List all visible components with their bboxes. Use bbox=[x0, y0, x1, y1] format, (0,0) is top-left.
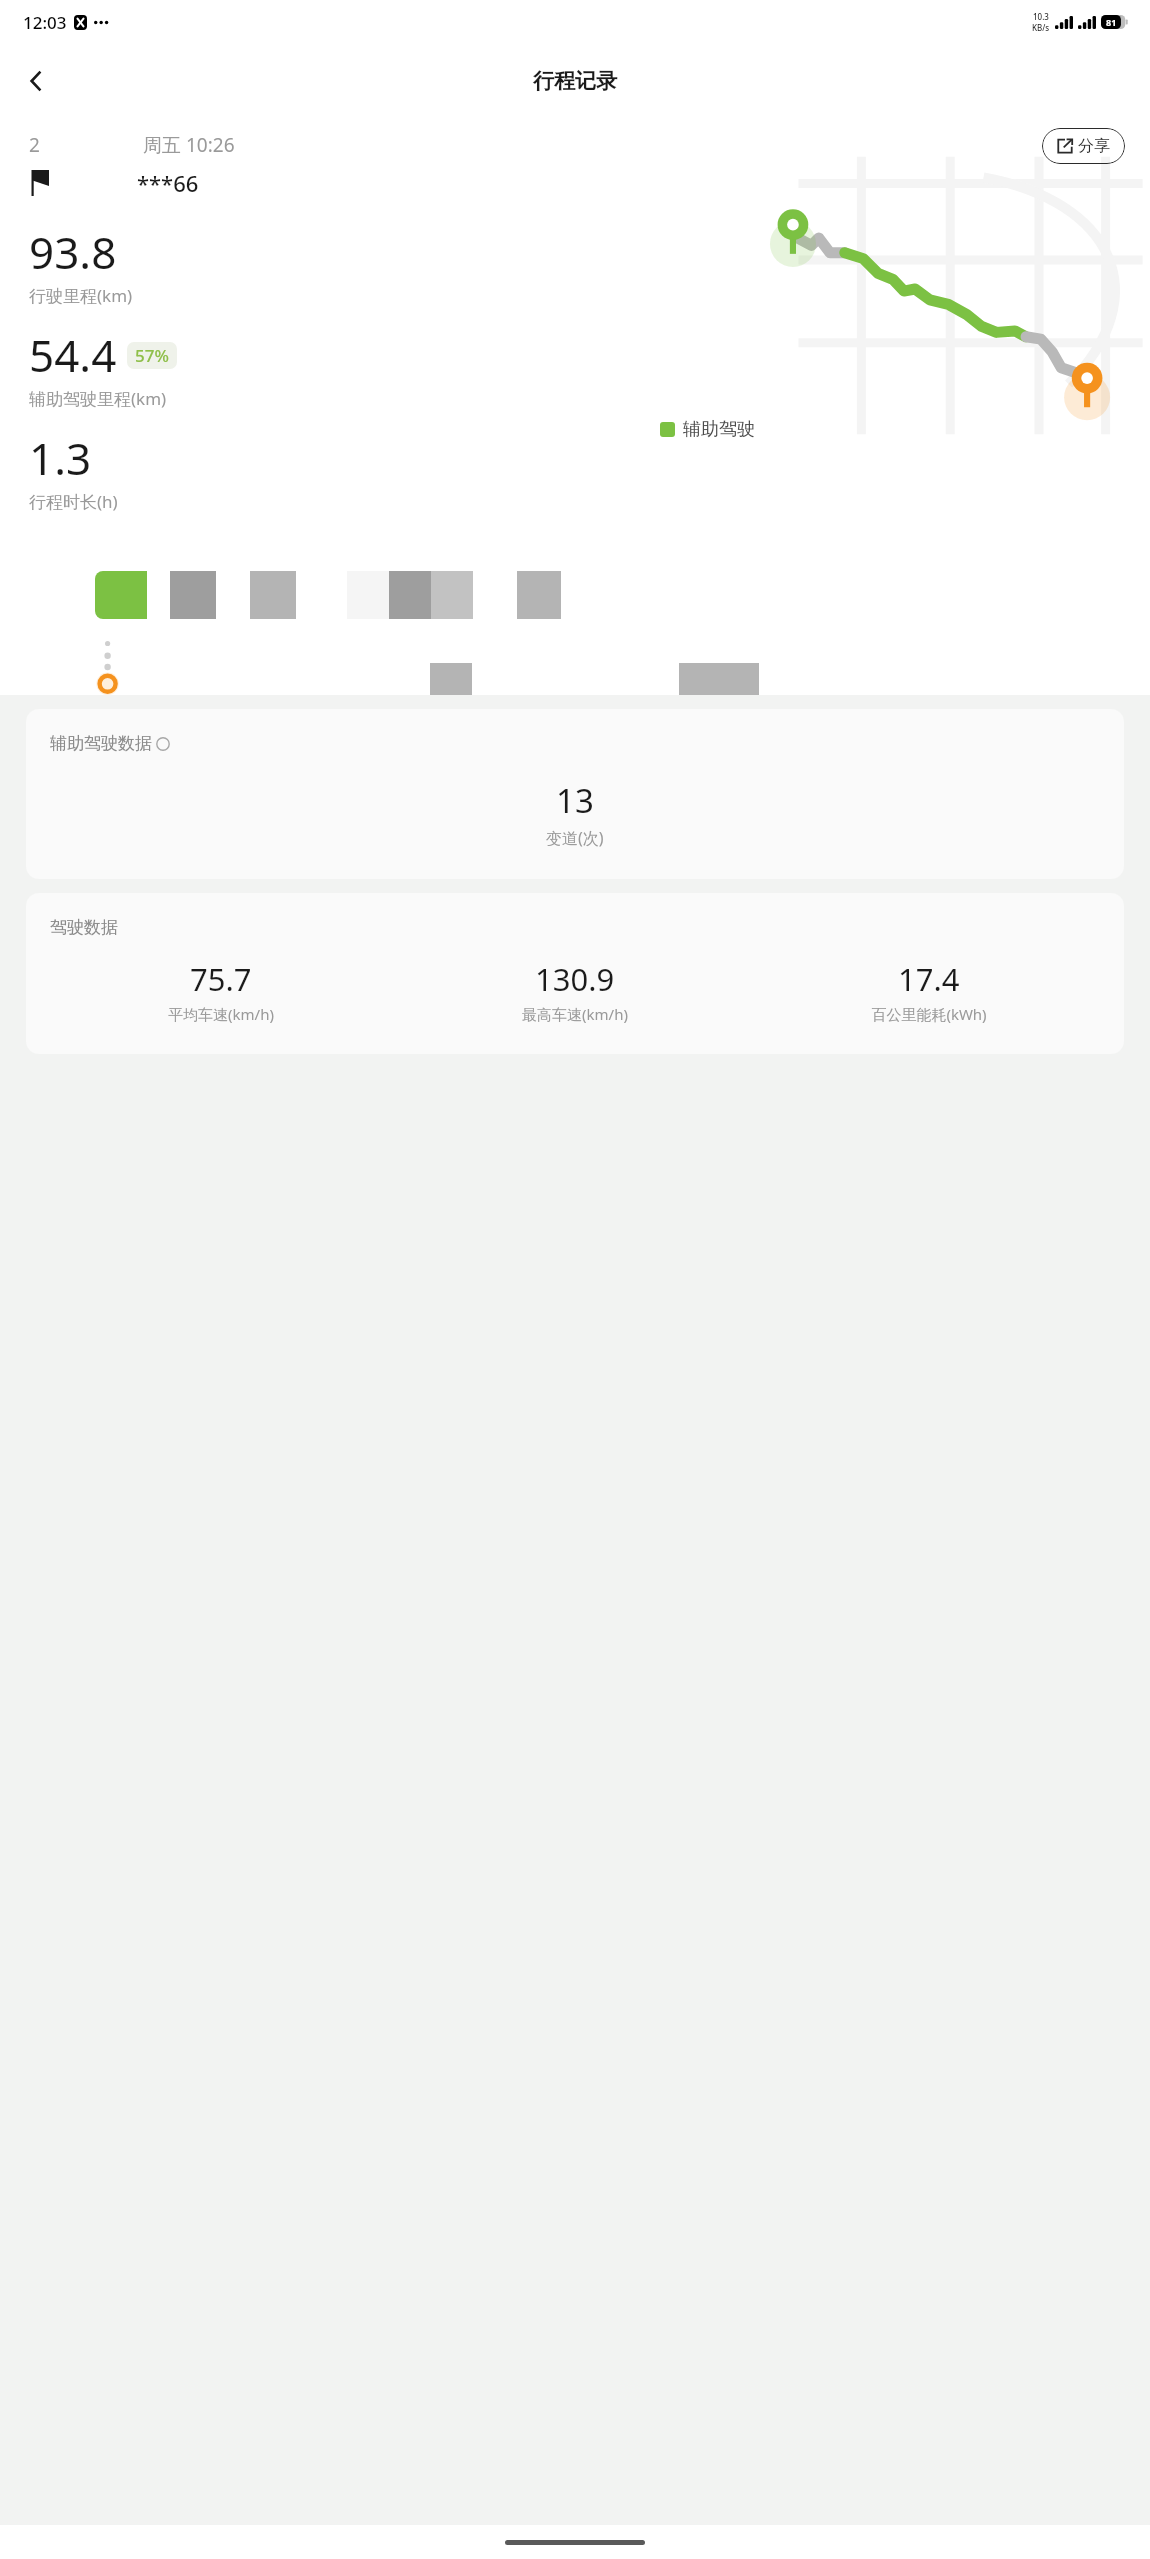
staticText: 57% bbox=[135, 344, 169, 367]
staticText: 10.3 bbox=[1033, 11, 1049, 22]
staticText: 辅助驾驶数据 bbox=[50, 733, 152, 754]
staticText: ***66 bbox=[137, 168, 199, 198]
staticText: 驾驶数据 bbox=[50, 917, 118, 938]
staticText: 辅助驾驶 bbox=[683, 418, 755, 441]
staticText: 81 bbox=[1106, 16, 1117, 28]
staticText: 1.3 bbox=[29, 428, 92, 488]
staticText: 最高车速(km/h) bbox=[522, 1004, 628, 1024]
button[interactable]: 辅助驾驶数据 bbox=[26, 709, 1124, 879]
staticText: 平均车速(km/h) bbox=[168, 1004, 274, 1024]
button[interactable]: 分享 bbox=[1042, 128, 1125, 164]
staticText: 辅助驾驶里程(km) bbox=[29, 387, 167, 410]
staticText: 130.9 bbox=[535, 958, 615, 1000]
button[interactable]: Back bbox=[12, 57, 60, 105]
staticText: 12:03 bbox=[23, 11, 67, 34]
staticText: 分享 bbox=[1078, 136, 1110, 156]
staticText: 周五 10:26 bbox=[143, 132, 235, 158]
staticText: 93.8 bbox=[29, 222, 117, 282]
staticText: 17.4 bbox=[898, 958, 960, 1000]
button[interactable]: 驾驶数据 bbox=[26, 893, 1124, 1054]
staticText: 行程记录 bbox=[533, 68, 617, 94]
staticText: 2 bbox=[29, 132, 40, 158]
staticText: 13 bbox=[556, 778, 594, 823]
staticText: 75.7 bbox=[190, 958, 252, 1000]
staticText: 行驶里程(km) bbox=[29, 284, 133, 307]
staticText: 行程时长(h) bbox=[29, 490, 118, 513]
staticText: 54.4 bbox=[29, 325, 117, 385]
staticText: 变道(次) bbox=[546, 827, 604, 849]
staticText: KB/s bbox=[1032, 22, 1050, 33]
staticText: 百公里能耗(kWh) bbox=[871, 1004, 987, 1024]
